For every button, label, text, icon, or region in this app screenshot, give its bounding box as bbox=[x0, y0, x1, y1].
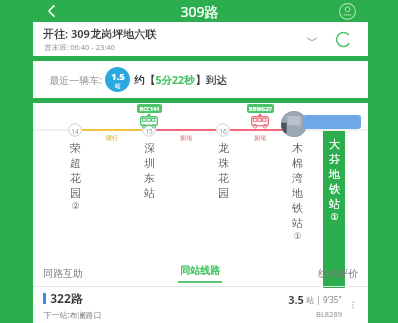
staticText: 东 bbox=[144, 171, 155, 185]
staticText: 站 bbox=[115, 83, 121, 90]
button[interactable]: 同站线路 bbox=[144, 260, 256, 286]
staticText: ① bbox=[330, 212, 339, 222]
button[interactable]: 大 bbox=[323, 131, 345, 288]
button[interactable]: Back bbox=[42, 1, 62, 21]
staticText: 棉 bbox=[292, 156, 303, 170]
staticText: 站 bbox=[292, 216, 303, 230]
staticText: 15 bbox=[145, 127, 153, 136]
button[interactable]: User avatar bbox=[281, 111, 307, 137]
staticText: 芬 bbox=[329, 152, 340, 166]
button[interactable]: 开往: 309龙岗坪地六联 bbox=[33, 22, 368, 56]
staticText: 花 bbox=[70, 171, 81, 185]
staticText: 铁 bbox=[292, 201, 303, 215]
button[interactable]: 322路 bbox=[33, 287, 368, 323]
staticText: 17 bbox=[293, 127, 301, 136]
staticText: 同站线路 bbox=[180, 264, 220, 277]
button[interactable]: 线路评价 bbox=[256, 260, 368, 286]
button[interactable]: 木 bbox=[289, 141, 305, 241]
staticText: 309路 bbox=[180, 2, 219, 21]
staticText: 龙 bbox=[218, 141, 229, 155]
staticText: 拥堵 bbox=[254, 134, 266, 142]
button[interactable]: Refresh bbox=[335, 31, 352, 48]
staticText: 荣 bbox=[70, 141, 81, 155]
staticText: 14 bbox=[71, 127, 79, 136]
staticText: 花 bbox=[218, 171, 229, 185]
staticText: 同路互助 bbox=[43, 267, 83, 280]
staticText: 站 bbox=[329, 197, 340, 211]
button[interactable]: 最近一辆车: bbox=[33, 61, 368, 98]
staticText: 拥堵 bbox=[180, 134, 192, 142]
staticText: 湾 bbox=[292, 171, 303, 185]
staticText: 珠 bbox=[218, 156, 229, 170]
staticText: 】到达 bbox=[195, 74, 227, 87]
staticText: 下一站:布澜路口 bbox=[43, 309, 102, 320]
staticText: 圳 bbox=[144, 156, 155, 170]
staticText: ① bbox=[293, 231, 302, 241]
staticText: 约【 bbox=[134, 74, 155, 87]
staticText: 首末班: bbox=[43, 42, 70, 52]
button[interactable]: More options bbox=[346, 298, 360, 312]
staticText: 深 bbox=[144, 141, 155, 155]
staticText: 地 bbox=[292, 186, 303, 200]
staticText: 1.5 bbox=[111, 70, 125, 83]
button[interactable]: 荣 bbox=[67, 141, 83, 211]
staticText: 开往: 309龙岗坪地六联 bbox=[43, 26, 156, 41]
button[interactable]: Map bbox=[339, 3, 356, 20]
button[interactable]: BBWG27 bbox=[240, 104, 280, 130]
button[interactable]: 龙 bbox=[215, 141, 231, 201]
button[interactable]: BCC141 bbox=[129, 104, 169, 130]
staticText: BBWG27 bbox=[249, 105, 272, 112]
staticText: 铁 bbox=[329, 182, 340, 196]
staticText: 06:40 - 23:40 bbox=[70, 42, 115, 52]
staticText: 线路评价 bbox=[318, 267, 358, 280]
staticText: 站 | 9'35" bbox=[306, 294, 342, 305]
staticText: 3.5 bbox=[288, 292, 304, 307]
staticText: 地 bbox=[329, 167, 340, 181]
staticText: 超 bbox=[70, 156, 81, 170]
button[interactable]: Expand bbox=[304, 31, 320, 47]
staticText: 园 bbox=[218, 186, 229, 200]
staticText: 缓行 bbox=[106, 134, 118, 142]
staticText: 最近一辆车: bbox=[49, 73, 102, 87]
staticText: 园 bbox=[70, 186, 81, 200]
staticText: BL8289 bbox=[316, 309, 342, 319]
staticText: BCC141 bbox=[139, 105, 160, 112]
staticText: 大 bbox=[329, 137, 340, 151]
staticText: 16 bbox=[219, 127, 227, 136]
button[interactable]: 同路互助 bbox=[33, 260, 144, 286]
staticText: 322路 bbox=[50, 290, 83, 306]
staticText: 站 bbox=[144, 186, 155, 200]
staticText: 5分22秒 bbox=[155, 73, 195, 87]
staticText: ② bbox=[71, 201, 80, 211]
staticText: 木 bbox=[292, 141, 303, 155]
button[interactable]: 深 bbox=[141, 141, 157, 201]
